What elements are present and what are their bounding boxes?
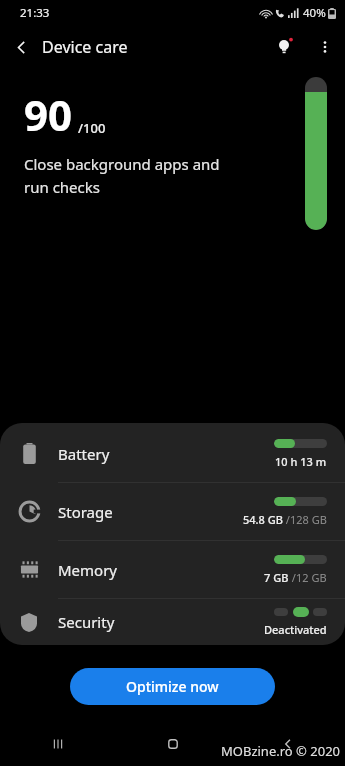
staticText: Security: [58, 612, 115, 632]
staticText: Memory: [58, 560, 118, 580]
staticText: /100: [78, 119, 106, 137]
staticText: /12 GB: [289, 570, 327, 585]
staticText: 90: [24, 86, 73, 143]
staticText: Device care: [42, 36, 128, 58]
staticText: MOBzine.ro © 2020: [221, 742, 341, 760]
staticText: Battery: [58, 444, 110, 464]
staticText: Storage: [58, 502, 113, 522]
button[interactable]: More options: [305, 27, 345, 67]
button[interactable]: Storage: [0, 483, 345, 540]
staticText: Optimize now: [126, 677, 219, 696]
button[interactable]: Tips: [265, 27, 305, 67]
staticText: 7 GB: [264, 570, 289, 585]
button[interactable]: Memory: [0, 541, 345, 598]
button[interactable]: Security: [0, 599, 345, 645]
button[interactable]: Home: [115, 722, 230, 766]
staticText: Close background apps and run checks: [24, 154, 220, 197]
staticText: Deactivated: [264, 622, 327, 637]
staticText: 54.8 GB: [243, 512, 283, 527]
staticText: 10 h 13 m: [275, 454, 327, 469]
staticText: 40%: [303, 5, 326, 21]
button[interactable]: Back: [0, 26, 42, 68]
staticText: /128 GB: [283, 512, 327, 527]
button[interactable]: Recent apps: [0, 722, 115, 766]
button[interactable]: Back: [230, 722, 345, 766]
button[interactable]: Battery: [0, 425, 345, 482]
staticText: 21:33: [20, 5, 50, 21]
button[interactable]: Optimize now: [70, 668, 275, 705]
